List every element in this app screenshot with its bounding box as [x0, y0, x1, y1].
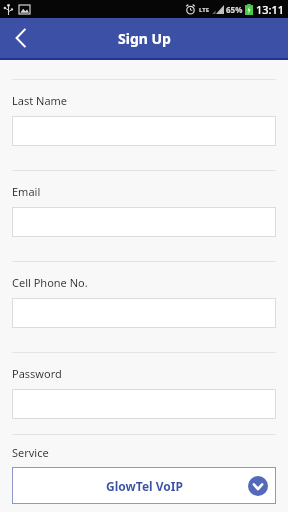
staticText: Service [12, 445, 49, 460]
button[interactable] [12, 116, 276, 146]
staticText: Sign Up [118, 29, 171, 48]
staticText: Email [12, 184, 41, 199]
staticText: Cell Phone No. [12, 275, 88, 290]
staticText: Password [12, 366, 62, 381]
button[interactable]: GlowTel VoIP [12, 467, 276, 504]
staticText: 13:11 [256, 2, 285, 17]
other: Open service list [248, 476, 268, 496]
button[interactable] [12, 298, 276, 328]
staticText: LTE [199, 6, 210, 14]
button[interactable]: Back [0, 18, 40, 58]
staticText: GlowTel VoIP [106, 478, 183, 494]
button[interactable] [12, 389, 276, 419]
button[interactable] [12, 207, 276, 237]
staticText: Last Name [12, 93, 68, 108]
staticText: 65% [226, 4, 243, 15]
